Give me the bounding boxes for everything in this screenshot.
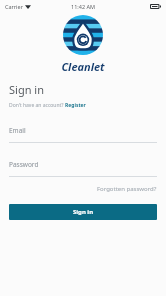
staticText: Forgotten password?: [97, 185, 157, 193]
staticText: 11:42 AM: [71, 3, 95, 10]
staticText: Don't have an account?: [9, 102, 65, 109]
staticText: Sign in: [9, 82, 44, 97]
staticText: Password: [9, 160, 39, 169]
button[interactable]: Sign in: [9, 204, 157, 220]
button[interactable]: Forgotten password?: [97, 185, 157, 193]
staticText: Carrier: [5, 3, 23, 10]
staticText: Email: [9, 126, 26, 135]
staticText: Register: [65, 102, 86, 109]
staticText: Sign in: [73, 208, 94, 216]
button[interactable]: Register: [65, 102, 86, 109]
staticText: Cleanlet: [61, 59, 105, 74]
